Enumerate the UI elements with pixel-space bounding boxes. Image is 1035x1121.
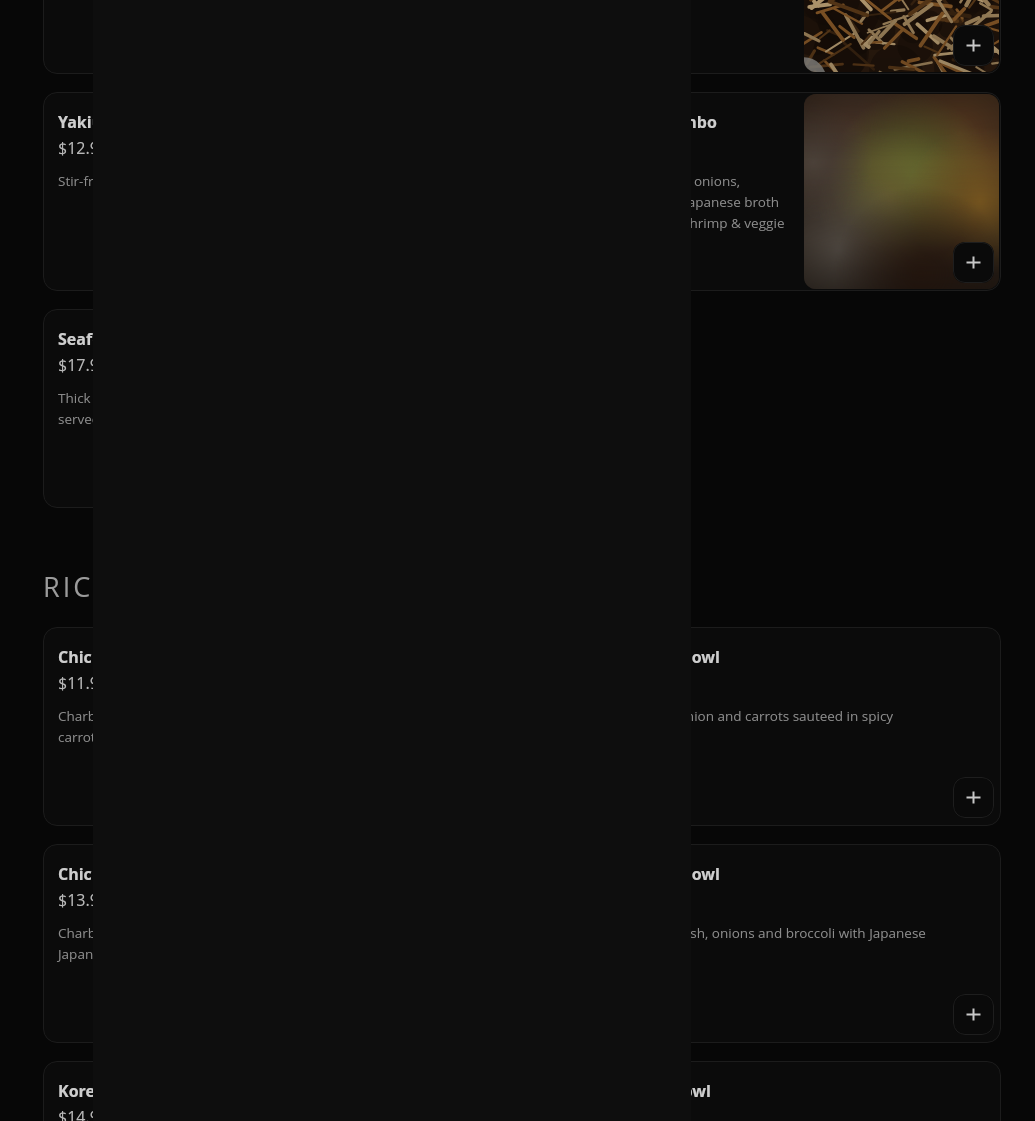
staticText: Chicken Teriyaki Bowl bbox=[546, 863, 720, 885]
button[interactable]: Beef Yakisoba bbox=[531, 0, 1001, 74]
button[interactable]: Seafood Udon Combo bbox=[531, 92, 1001, 291]
button[interactable]: Korean BBQ Beef Bowl bbox=[43, 1061, 513, 1121]
staticText: Stir-fried udon noodles, cabbage, carrot… bbox=[58, 172, 388, 190]
staticText: Chicken Katsu Bowl bbox=[58, 646, 215, 668]
staticText: Chicken Teriyaki Bowl bbox=[58, 863, 232, 885]
staticText: Spicy Tuna Rice Bowl bbox=[546, 1080, 711, 1102]
staticText: $17.95 bbox=[58, 354, 108, 376]
button[interactable]: Yakiudon bbox=[43, 92, 513, 291]
button[interactable]: Add to order bbox=[953, 777, 994, 818]
staticText: Charbroiled chicken, cabbage, onion and … bbox=[58, 707, 497, 746]
staticText: Chicken, zucchini, squash, onions and br… bbox=[546, 924, 926, 942]
staticText: Chicken Teriyaki Bowl bbox=[546, 646, 720, 668]
button[interactable]: Chicken Teriyaki Bowl bbox=[531, 627, 1001, 826]
staticText: $14.95 bbox=[58, 1106, 108, 1121]
button[interactable]: Spicy Tuna Rice Bowl bbox=[531, 1061, 1001, 1121]
staticText: RICE BOWLS bbox=[43, 568, 229, 605]
staticText: Seafood Udon Combo bbox=[546, 111, 717, 133]
button[interactable]: Chicken Teriyaki Bowl bbox=[43, 844, 513, 1043]
button[interactable]: Add to order bbox=[953, 242, 994, 283]
staticText: Thick wheat noodles simmered in a light … bbox=[58, 389, 497, 428]
staticText: $11.95 bbox=[58, 672, 108, 694]
staticText: $12.95 bbox=[58, 137, 108, 159]
staticText: Charbroiled chicken, squash, onions and … bbox=[58, 924, 497, 963]
button[interactable]: Add to order bbox=[953, 994, 994, 1035]
button[interactable]: Chicken Katsu Bowl bbox=[43, 627, 513, 826]
staticText: Seafood Udon bbox=[58, 328, 169, 350]
staticText: $13.95 bbox=[58, 889, 108, 911]
staticText: Korean BBQ Beef Bowl bbox=[58, 1080, 237, 1102]
button[interactable]: Seafood Udon bbox=[43, 309, 513, 508]
staticText: Charbroiled chicken, onion and carrots s… bbox=[546, 707, 894, 725]
button[interactable]: Chicken Teriyaki Bowl bbox=[531, 844, 1001, 1043]
staticText: Shrimp, crab, fish cake, onions, simmere… bbox=[546, 172, 788, 232]
staticText: Yakiudon bbox=[58, 111, 133, 133]
button[interactable]: Add to order bbox=[953, 25, 994, 66]
